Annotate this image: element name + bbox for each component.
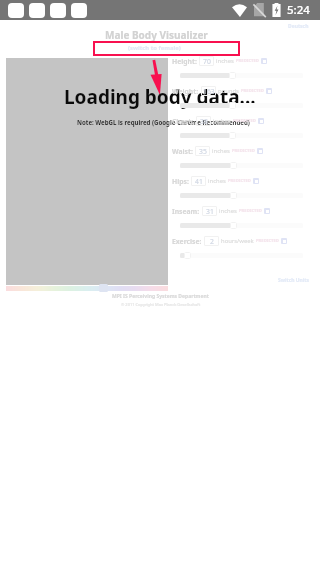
button[interactable]: (switch to female) (93, 41, 240, 56)
staticText: PREDICTED (232, 148, 255, 154)
staticText: 35 (199, 147, 207, 156)
staticText: PREDICTED (239, 208, 262, 214)
staticText: PREDICTED (256, 238, 279, 244)
button[interactable]: Help (264, 208, 270, 214)
staticText: © 2011 Copyright Max Planck Gesellschaft (121, 302, 201, 307)
button[interactable]: Inseam: (202, 206, 217, 216)
button[interactable]: Chest: (196, 116, 211, 126)
button[interactable]: Deutsch (288, 23, 309, 30)
staticText: PREDICTED (241, 88, 264, 94)
staticText: 70 (203, 57, 211, 66)
button[interactable]: Tab (50, 3, 66, 18)
staticText: Waist: (172, 147, 193, 156)
staticText: inches (219, 207, 237, 215)
button[interactable]: Exercise: slider (184, 252, 191, 259)
staticText: 41 (195, 177, 203, 186)
button[interactable]: Help (257, 148, 263, 154)
button[interactable]: Tab (29, 3, 45, 18)
button[interactable]: Tab (71, 3, 87, 18)
button[interactable]: Height: (199, 56, 214, 66)
button[interactable]: Help (261, 58, 267, 64)
button[interactable]: Tab (8, 3, 24, 18)
other: Battery charging (271, 3, 282, 17)
button[interactable]: Waist: (195, 146, 210, 156)
button[interactable]: Help (253, 178, 259, 184)
staticText: inches (208, 177, 226, 185)
staticText: PREDICTED (236, 58, 259, 64)
staticText: inches (216, 57, 234, 65)
staticText: MPI IS Perceiving Systems Department (112, 293, 209, 300)
staticText: Inseam: (172, 207, 200, 216)
staticText: Chest: (172, 117, 194, 126)
staticText: PREDICTED (233, 118, 256, 124)
staticText: 163 (203, 87, 215, 96)
staticText: inches (213, 117, 231, 125)
button[interactable]: Weight: (201, 86, 216, 96)
staticText: Exercise: (172, 237, 202, 246)
staticText: 5:24 (287, 2, 310, 18)
staticText: hours/week (221, 237, 254, 245)
button[interactable]: Inseam: slider (230, 222, 237, 229)
button[interactable]: Switch Units (278, 277, 310, 284)
staticText: Male Body Visualizer (105, 28, 208, 42)
staticText: Weight: (172, 87, 199, 96)
button[interactable]: Waist: slider (230, 162, 237, 169)
button[interactable]: Help (258, 118, 264, 124)
staticText: 31 (206, 207, 214, 216)
staticText: inches (212, 147, 230, 155)
staticText: PREDICTED (228, 178, 251, 184)
staticText: Hips: (172, 177, 189, 186)
button[interactable]: Chest: slider (229, 132, 236, 139)
staticText: Loading body data... (64, 84, 256, 110)
staticText: 2 (210, 237, 214, 246)
staticText: pounds (218, 87, 239, 95)
button[interactable]: Weight: slider (229, 102, 236, 109)
button[interactable]: Help (281, 238, 287, 244)
button[interactable]: Help (266, 88, 272, 94)
staticText: (switch to female) (128, 44, 181, 52)
staticText: 38 (200, 117, 208, 126)
staticText: Note: WebGL is required (Google Chrome R… (77, 118, 250, 126)
other: Wi-Fi (232, 3, 247, 17)
other: No SIM card (254, 3, 266, 17)
button[interactable]: Hips: (191, 176, 206, 186)
button[interactable]: Exercise: (204, 236, 219, 246)
button[interactable]: Hips: slider (230, 192, 237, 199)
button[interactable]: Height: slider (229, 72, 236, 79)
button[interactable]: Lighting slider (99, 284, 108, 292)
staticText: Height: (172, 57, 197, 66)
